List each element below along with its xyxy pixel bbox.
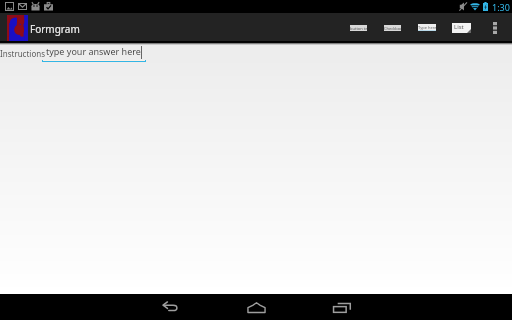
button[interactable]: List <box>452 23 471 33</box>
staticText: type your answer here <box>46 45 141 57</box>
button[interactable]: Recent apps <box>299 294 385 320</box>
staticText: Type here <box>418 25 436 30</box>
staticText: Formgram <box>30 22 80 36</box>
button[interactable]: Checkbox <box>384 25 401 31</box>
staticText: button text <box>350 26 367 31</box>
staticText: List <box>454 23 464 31</box>
button[interactable]: Type here <box>418 24 436 31</box>
button[interactable]: Home <box>213 294 299 320</box>
staticText: Checkbox <box>384 26 401 31</box>
button[interactable]: button text <box>350 25 367 31</box>
staticText: 1:30 <box>492 1 510 13</box>
button[interactable]: Back <box>127 294 213 320</box>
staticText: Instructions <box>0 48 46 59</box>
button[interactable]: More options <box>487 16 503 40</box>
